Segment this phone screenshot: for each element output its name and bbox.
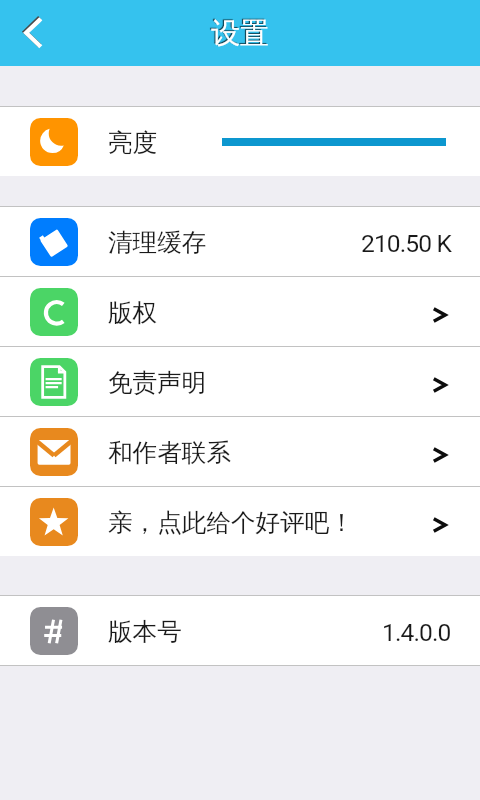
button[interactable]: 亲，点此给个好评吧！ (0, 487, 480, 556)
staticText: 210.50 K (361, 229, 451, 258)
staticText: 和作者联系 (108, 437, 231, 468)
staticText: 亲，点此给个好评吧！ (108, 507, 354, 538)
staticText: 清理缓存 (108, 227, 207, 258)
button[interactable]: 免责声明 (0, 347, 480, 416)
button[interactable]: 版权 (0, 277, 480, 346)
button[interactable]: 版本号 (0, 596, 480, 665)
staticText: 设置 (211, 15, 269, 52)
staticText: 亮度 (108, 127, 158, 158)
button[interactable]: 和作者联系 (0, 417, 480, 486)
staticText: 1.4.0.0 (382, 618, 451, 647)
staticText: 免责声明 (108, 367, 207, 398)
staticText: 版权 (108, 297, 158, 328)
staticText: 版本号 (108, 616, 182, 647)
button[interactable]: 亮度 (0, 107, 480, 176)
button[interactable]: 清理缓存 (0, 207, 480, 276)
button[interactable]: Back (0, 0, 58, 66)
